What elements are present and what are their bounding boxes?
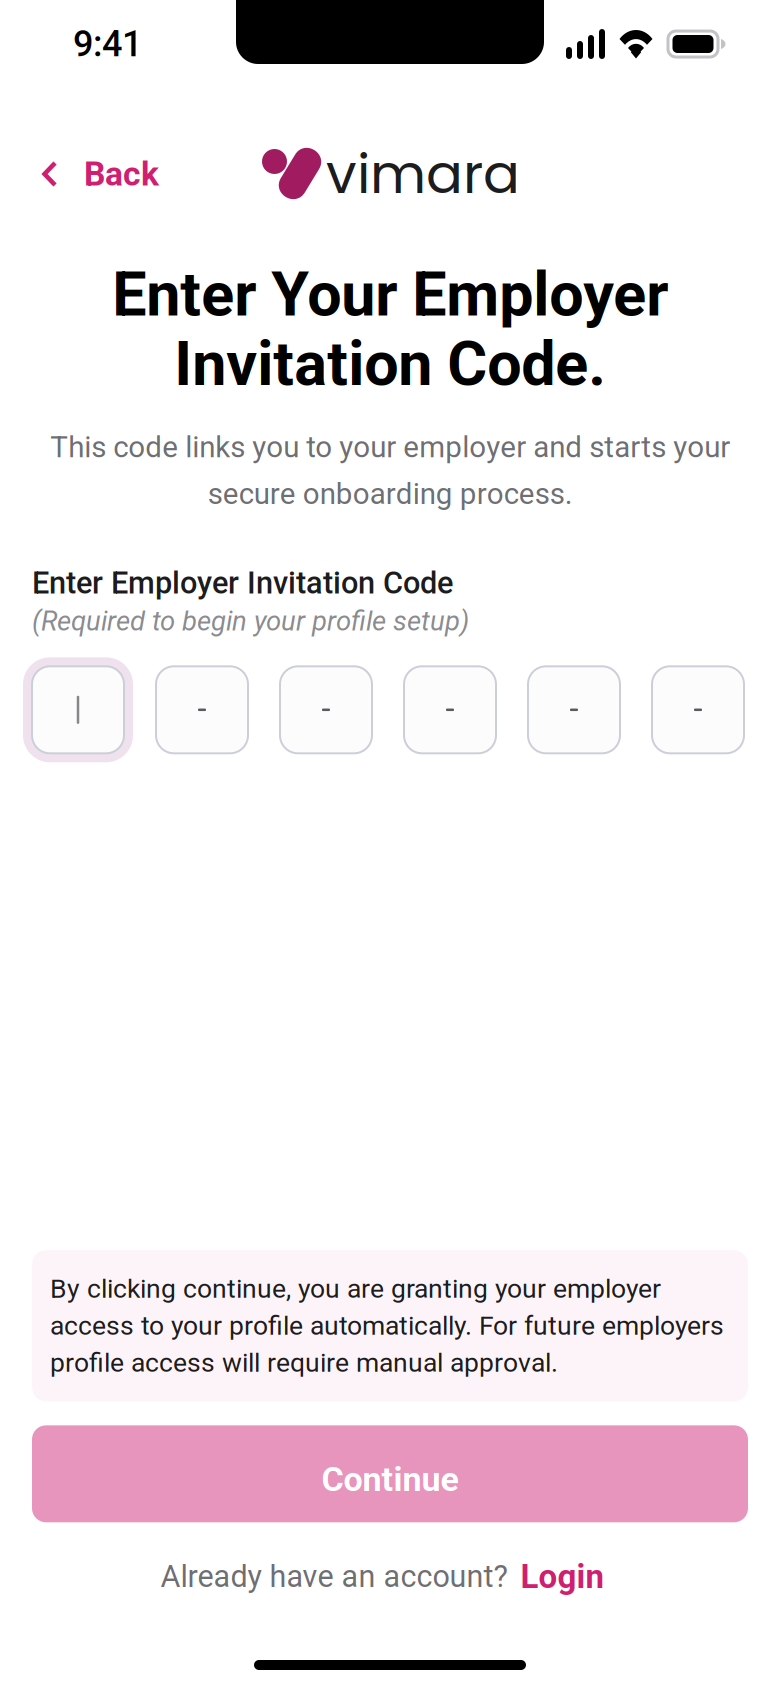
staticText: Continue [321, 1459, 458, 1499]
staticText: vimara [326, 136, 520, 212]
button[interactable]: Invitation code digit [147, 657, 257, 762]
button[interactable]: Invitation code digit [271, 657, 381, 762]
staticText: Enter Employer Invitation Code [32, 565, 453, 601]
button[interactable]: Continue [32, 1425, 748, 1522]
button[interactable]: Back [0, 142, 173, 206]
button[interactable]: Invitation code digit 1 [23, 657, 133, 762]
staticText: Enter Your Employer Invitation Code. [112, 259, 668, 400]
staticText: Already have an account? [160, 1559, 507, 1594]
staticText: Back [84, 154, 159, 194]
button[interactable]: Invitation code digit [519, 657, 629, 762]
button[interactable]: Invitation code digit [643, 657, 753, 762]
staticText: This code links you to your employer and… [50, 430, 730, 511]
button[interactable]: Invitation code digit [395, 657, 505, 762]
staticText: Login [520, 1557, 603, 1596]
button[interactable]: Already have an account? [160, 1547, 619, 1606]
staticText: 9:41 [73, 23, 142, 65]
staticText: By clicking continue, you are granting y… [50, 1273, 724, 1378]
staticText: (Required to begin your profile setup) [32, 605, 469, 637]
